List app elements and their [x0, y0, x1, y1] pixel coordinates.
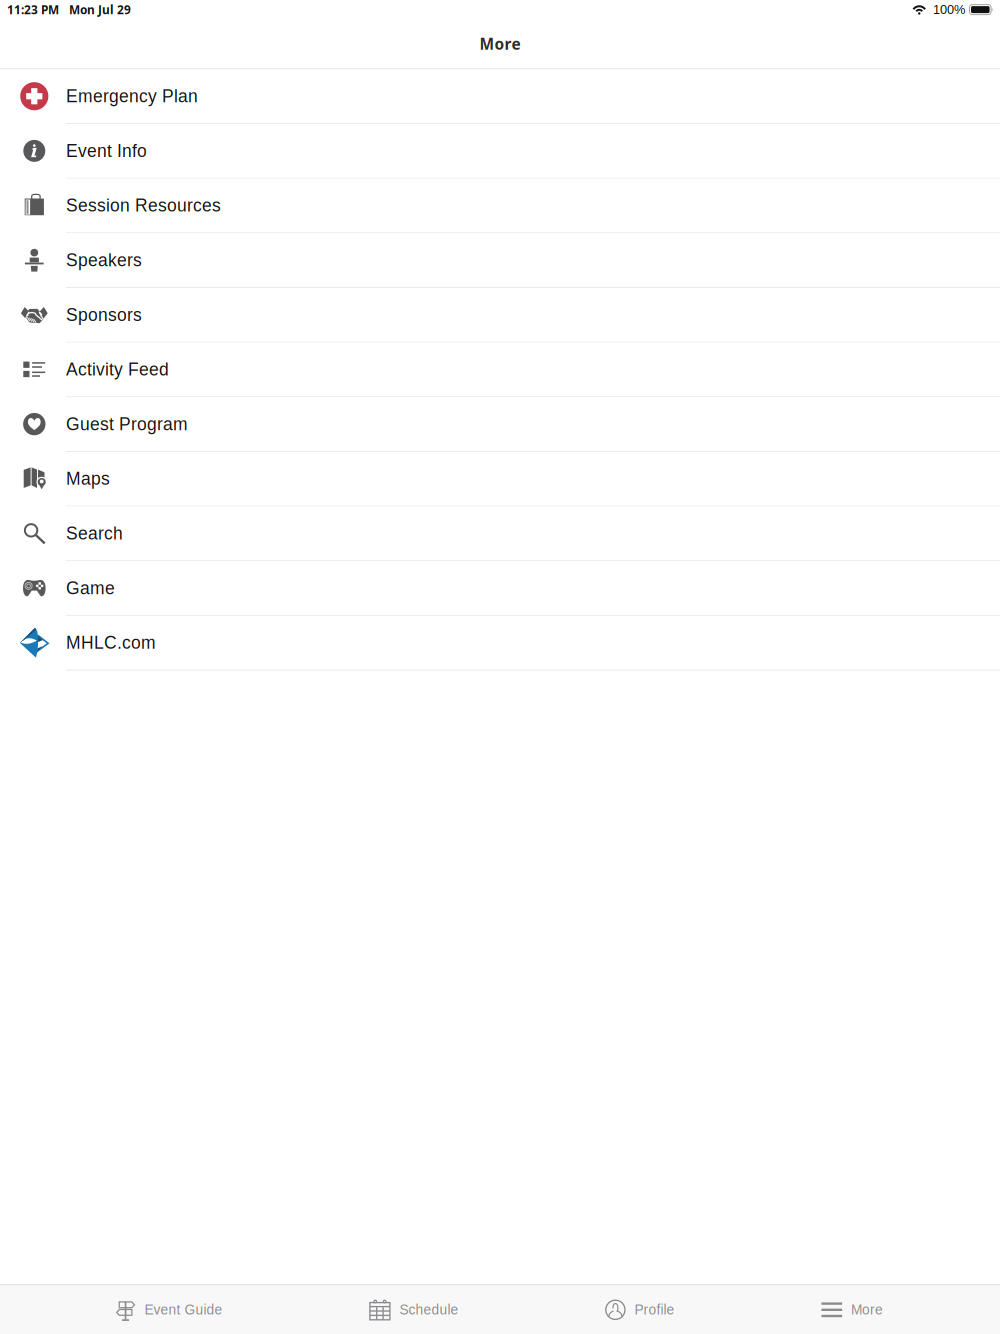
button[interactable]: Event Info — [0, 124, 1000, 179]
button[interactable]: Guest Program — [0, 397, 1000, 452]
staticText: More — [851, 1302, 883, 1317]
button[interactable]: Game — [0, 561, 1000, 616]
button[interactable]: Session Resources — [0, 179, 1000, 233]
button[interactable]: Emergency Plan — [0, 69, 1000, 124]
button[interactable]: Maps — [0, 452, 1000, 506]
staticText: Event Guide — [144, 1302, 222, 1317]
staticText: Guest Program — [66, 414, 188, 434]
staticText: Event Info — [66, 141, 147, 161]
staticText: Activity Feed — [66, 360, 169, 379]
staticText: Game — [66, 578, 115, 598]
button[interactable]: Sponsors — [0, 288, 1000, 343]
button[interactable]: Profile — [599, 1285, 680, 1334]
staticText: Maps — [66, 469, 110, 488]
staticText: MHLC.com — [66, 633, 156, 652]
staticText: Sponsors — [66, 305, 142, 325]
staticText: 11:23 PM — [7, 1, 59, 18]
staticText: More — [479, 33, 520, 54]
staticText: Speakers — [66, 250, 142, 270]
button[interactable]: Speakers — [0, 233, 1000, 288]
staticText: Emergency Plan — [66, 86, 198, 106]
button[interactable]: Schedule — [363, 1285, 464, 1334]
staticText: Mon Jul 29 — [69, 1, 131, 18]
button[interactable]: Activity Feed — [0, 343, 1000, 397]
button[interactable]: Search — [0, 507, 1000, 561]
staticText: 100% — [933, 2, 965, 17]
button[interactable]: More — [815, 1285, 889, 1334]
staticText: Profile — [634, 1302, 674, 1317]
staticText: Search — [66, 524, 123, 543]
staticText: Session Resources — [66, 196, 221, 215]
staticText: Schedule — [399, 1302, 458, 1317]
button[interactable]: Event Guide — [111, 1285, 228, 1334]
button[interactable]: MHLC.com — [0, 616, 1000, 670]
